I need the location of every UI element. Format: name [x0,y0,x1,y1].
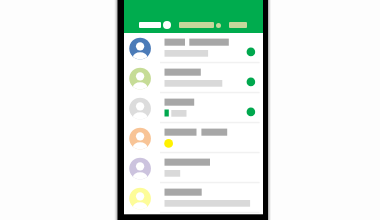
button[interactable]: Profile [163,21,171,29]
button[interactable] [124,33,263,63]
button[interactable]: Menu [139,20,163,30]
button[interactable]: Search [179,22,214,28]
button[interactable] [124,93,263,123]
button[interactable] [124,123,263,153]
button[interactable] [124,153,263,183]
button[interactable]: More options [216,23,221,28]
button[interactable] [124,183,263,213]
button[interactable]: Action [229,22,247,28]
button[interactable] [124,63,263,93]
